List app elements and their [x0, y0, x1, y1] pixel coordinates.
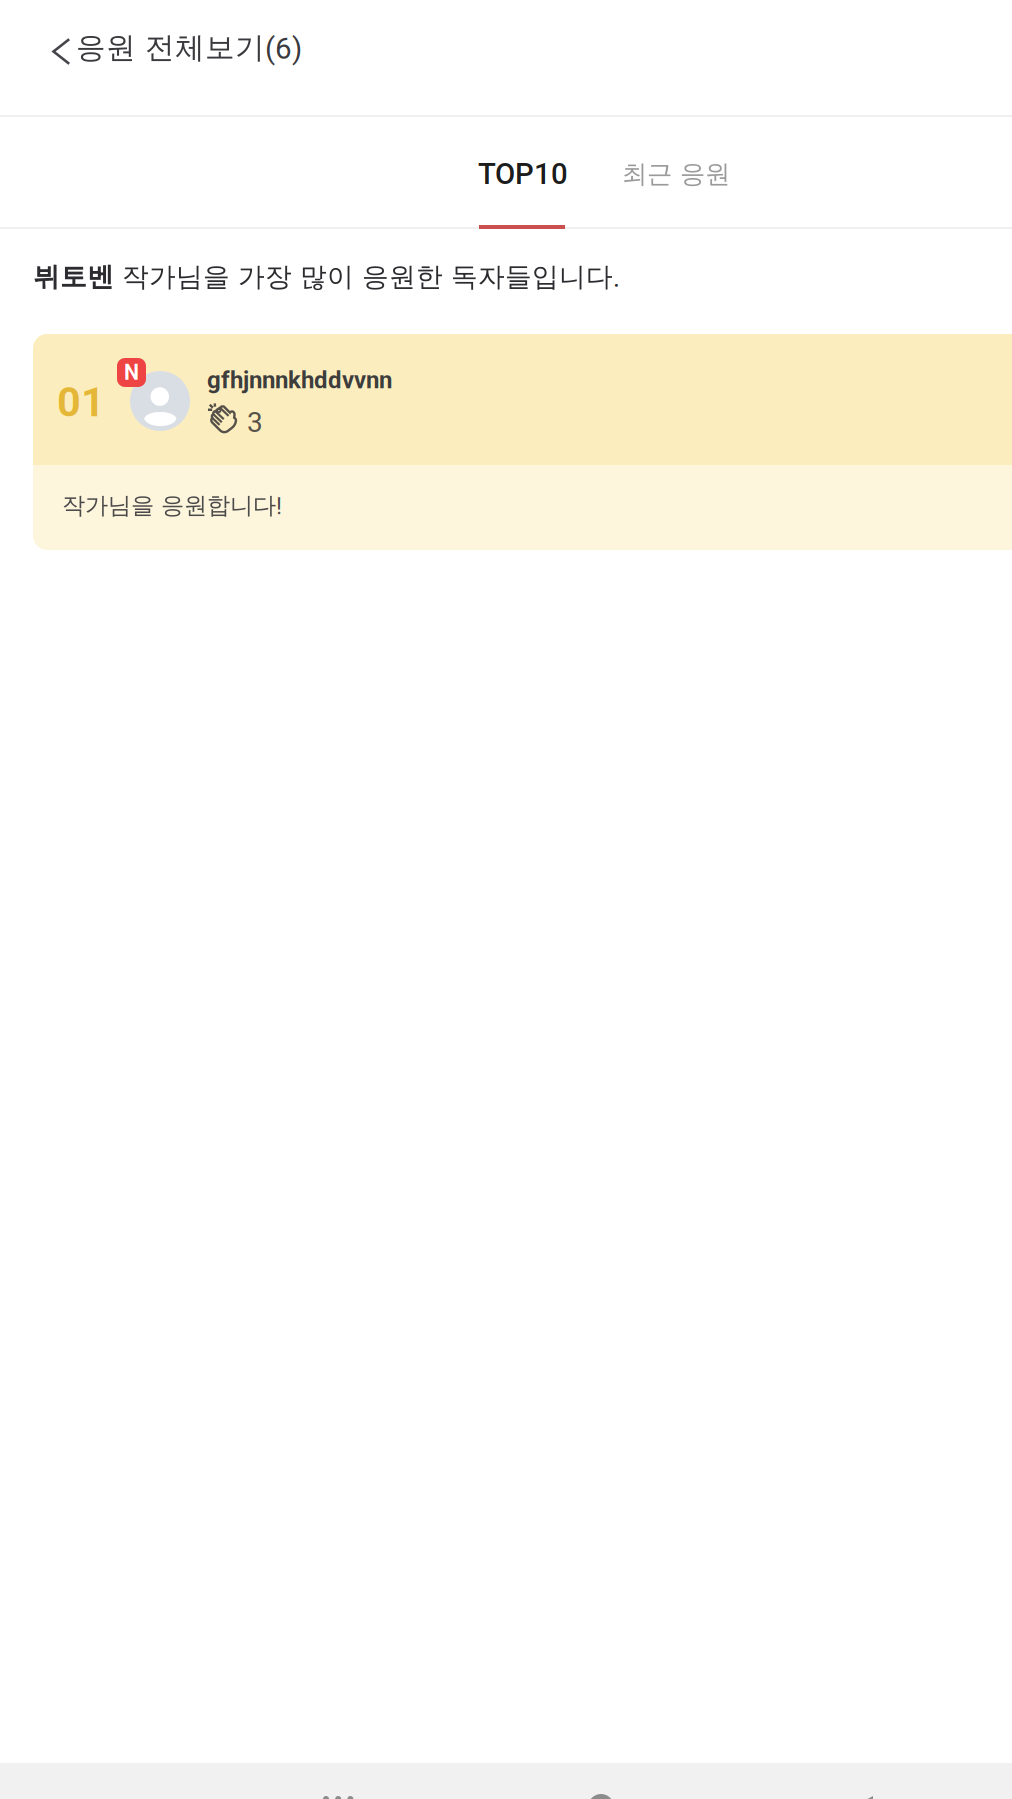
- button[interactable]: 01: [33, 334, 1012, 550]
- button[interactable]: 응원 전체보기(6): [0, 0, 1012, 115]
- staticText: N: [124, 360, 139, 385]
- staticText: TOP10: [478, 157, 568, 191]
- button[interactable]: TOP10: [479, 117, 567, 229]
- button[interactable]: 최근 응원: [605, 117, 747, 227]
- staticText: 작가님을 응원합니다!: [62, 491, 282, 520]
- staticText: 응원 전체보기(6): [76, 29, 302, 66]
- staticText: 최근 응원: [622, 158, 730, 190]
- staticText: 뷔토벤: [33, 260, 114, 294]
- staticText: gfhjnnnkhddvvnn: [207, 366, 392, 394]
- staticText: 3: [247, 406, 263, 439]
- staticText: 01: [57, 378, 105, 426]
- staticText: 작가님을 가장 많이 응원한 독자들입니다.: [114, 260, 620, 294]
